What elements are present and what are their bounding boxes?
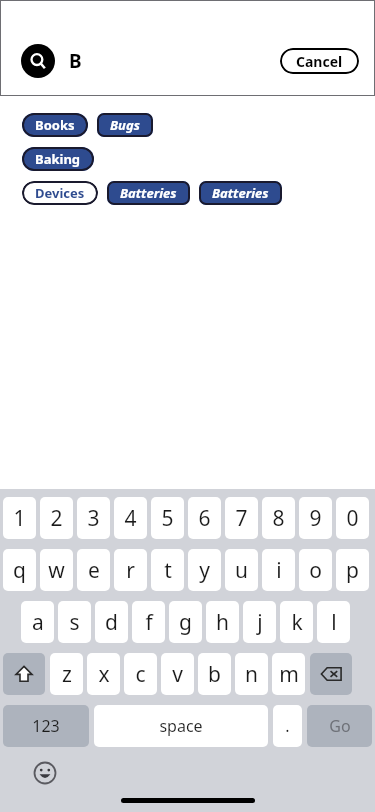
staticText: 123 <box>32 715 60 737</box>
button[interactable]: l <box>317 601 350 643</box>
button[interactable]: 123 <box>3 705 89 747</box>
button[interactable]: t <box>151 549 184 591</box>
button[interactable]: 4 <box>114 497 147 539</box>
staticText: Books <box>35 116 75 134</box>
button[interactable]: j <box>243 601 276 643</box>
button[interactable]: Bugs <box>97 113 153 137</box>
staticText: 0 <box>346 504 359 533</box>
button[interactable]: space <box>94 705 268 747</box>
button[interactable]: v <box>161 653 194 695</box>
button[interactable]: p <box>336 549 369 591</box>
staticText: 9 <box>309 504 322 533</box>
button[interactable]: q <box>3 549 36 591</box>
staticText: u <box>235 556 248 585</box>
button[interactable]: 7 <box>225 497 258 539</box>
button[interactable]: Books <box>22 113 88 137</box>
button[interactable]: r <box>114 549 147 591</box>
staticText: y <box>199 556 210 585</box>
staticText: d <box>105 608 118 637</box>
staticText: z <box>62 660 72 689</box>
button[interactable]: 8 <box>262 497 295 539</box>
staticText: . <box>285 715 290 737</box>
button[interactable]: s <box>58 601 91 643</box>
button[interactable]: n <box>235 653 268 695</box>
staticText: m <box>279 660 299 689</box>
staticText: t <box>164 556 172 585</box>
staticText: r <box>126 556 135 585</box>
button[interactable]: y <box>188 549 221 591</box>
staticText: c <box>135 660 146 689</box>
button[interactable]: u <box>225 549 258 591</box>
staticText: Batteries <box>212 184 269 202</box>
button[interactable]: 6 <box>188 497 221 539</box>
staticText: h <box>216 608 229 637</box>
staticText: v <box>172 660 183 689</box>
button[interactable]: c <box>124 653 157 695</box>
staticText: Bugs <box>110 116 140 134</box>
staticText: a <box>32 608 44 637</box>
button[interactable]: m <box>272 653 305 695</box>
button[interactable]: . <box>273 705 302 747</box>
staticText: 6 <box>198 504 211 533</box>
button[interactable]: a <box>21 601 54 643</box>
staticText: q <box>13 556 26 585</box>
staticText: x <box>98 660 110 689</box>
staticText: i <box>276 556 282 585</box>
staticText: Go <box>329 715 351 737</box>
staticText: space <box>159 715 203 737</box>
button[interactable]: w <box>40 549 73 591</box>
button[interactable]: Cancel <box>280 48 359 74</box>
staticText: 7 <box>235 504 248 533</box>
button[interactable]: Batteries <box>199 181 282 205</box>
button[interactable]: b <box>198 653 231 695</box>
button[interactable]: Batteries <box>107 181 190 205</box>
staticText: Cancel <box>296 52 343 71</box>
staticText: Baking <box>35 150 81 168</box>
button[interactable]: 2 <box>40 497 73 539</box>
button[interactable]: h <box>206 601 239 643</box>
staticText: f <box>145 608 153 637</box>
staticText: b <box>208 660 221 689</box>
staticText: j <box>257 608 263 637</box>
staticText: e <box>88 556 100 585</box>
button[interactable]: Emoji <box>33 761 57 785</box>
button[interactable]: 9 <box>299 497 332 539</box>
staticText: 2 <box>50 504 63 533</box>
button[interactable]: 3 <box>77 497 110 539</box>
button[interactable]: Shift <box>3 653 45 695</box>
button[interactable]: 5 <box>151 497 184 539</box>
staticText: 8 <box>272 504 285 533</box>
button[interactable]: g <box>169 601 202 643</box>
staticText: o <box>309 556 322 585</box>
staticText: l <box>331 608 337 637</box>
staticText: w <box>48 556 65 585</box>
button[interactable]: Baking <box>22 147 94 171</box>
button[interactable]: z <box>50 653 83 695</box>
staticText: g <box>179 608 192 637</box>
staticText: p <box>346 556 359 585</box>
button[interactable]: i <box>262 549 295 591</box>
button[interactable]: Go <box>307 705 372 747</box>
staticText: 3 <box>87 504 100 533</box>
button[interactable]: Devices <box>22 181 98 205</box>
staticText: B <box>69 48 82 74</box>
staticText: 4 <box>124 504 137 533</box>
button[interactable]: 1 <box>3 497 36 539</box>
staticText: s <box>69 608 80 637</box>
staticText: Batteries <box>120 184 177 202</box>
staticText: Devices <box>35 184 85 202</box>
button[interactable]: o <box>299 549 332 591</box>
staticText: n <box>245 660 258 689</box>
button[interactable]: k <box>280 601 313 643</box>
button[interactable]: Backspace <box>310 653 352 695</box>
staticText: 5 <box>161 504 174 533</box>
button[interactable]: e <box>77 549 110 591</box>
staticText: 1 <box>13 504 26 533</box>
button[interactable]: Search <box>21 44 55 78</box>
button[interactable]: f <box>132 601 165 643</box>
button[interactable]: x <box>87 653 120 695</box>
button[interactable]: d <box>95 601 128 643</box>
button[interactable]: 0 <box>336 497 369 539</box>
staticText: k <box>291 608 303 637</box>
